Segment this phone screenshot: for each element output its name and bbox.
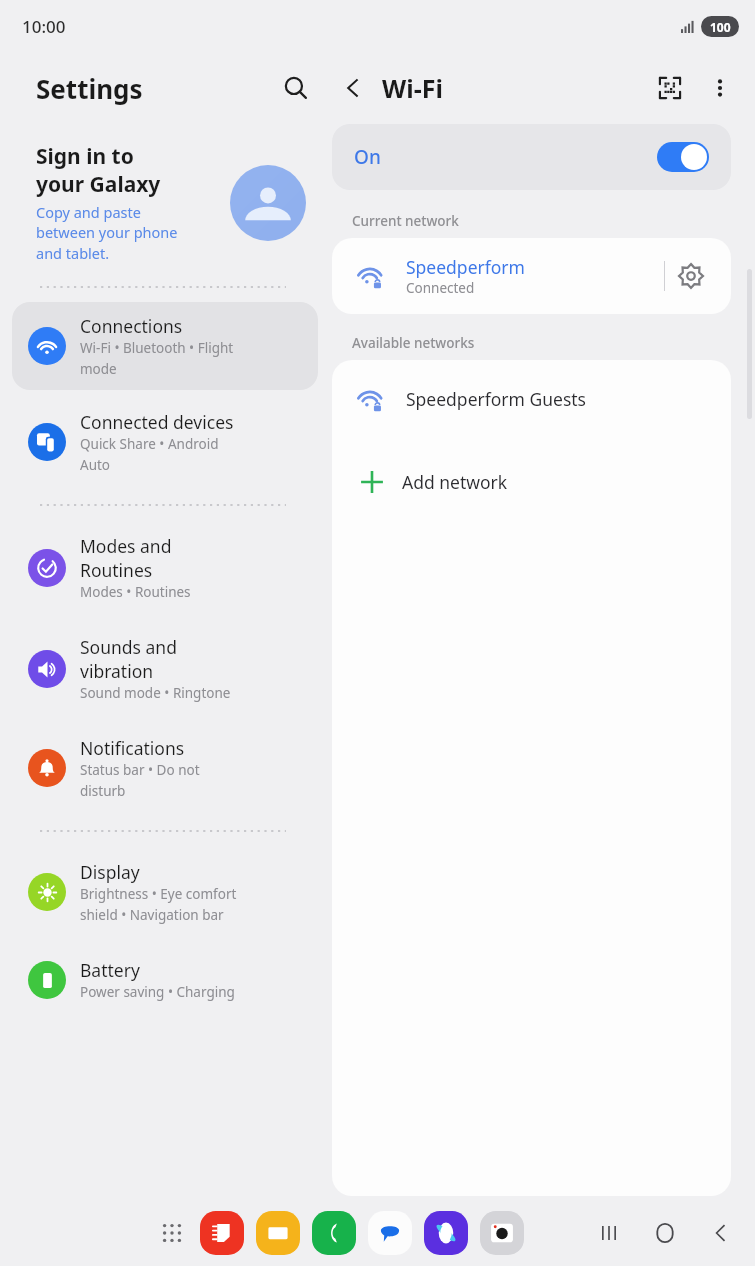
button[interactable]: Back: [693, 1205, 749, 1261]
staticText: Connected devices: [80, 410, 234, 434]
staticText: Display: [80, 860, 140, 884]
button[interactable]: Home: [637, 1205, 693, 1261]
staticText: Connected: [406, 279, 475, 297]
staticText: Sign in to your Galaxy: [36, 142, 161, 198]
button[interactable]: Connected devices: [12, 398, 318, 486]
button[interactable]: Notifications: [12, 724, 318, 812]
staticText: On: [354, 144, 381, 170]
staticText: Quick Share • Android Auto: [80, 435, 219, 474]
button[interactable]: Display: [12, 848, 318, 936]
button[interactable]: More options: [697, 65, 743, 111]
staticText: Modes • Routines: [80, 583, 191, 601]
button[interactable]: Camera: [480, 1211, 524, 1255]
staticText: Power saving • Charging: [80, 983, 235, 1001]
button[interactable]: Phone: [312, 1211, 356, 1255]
button[interactable]: Modes and Routines: [12, 522, 318, 613]
staticText: Copy and paste between your phone and ta…: [36, 202, 178, 264]
button[interactable]: Connections: [12, 302, 318, 390]
button[interactable]: My Files: [256, 1211, 300, 1255]
staticText: Wi-Fi: [382, 71, 443, 105]
button[interactable]: Add network: [332, 438, 731, 526]
button[interactable]: Scan QR code: [647, 65, 693, 111]
button[interactable]: Notes: [200, 1211, 244, 1255]
staticText: Available networks: [352, 334, 475, 352]
staticText: 10:00: [22, 15, 66, 38]
staticText: Speedperform: [406, 255, 525, 279]
button[interactable]: Messages: [368, 1211, 412, 1255]
staticText: 100: [710, 19, 731, 35]
button[interactable]: Apps: [150, 1211, 194, 1255]
button[interactable]: Recents: [581, 1205, 637, 1261]
button[interactable]: Search: [272, 64, 320, 112]
staticText: Sounds and vibration: [80, 635, 177, 683]
button[interactable]: Sounds and vibration: [12, 623, 318, 714]
staticText: Brightness • Eye comfort shield • Naviga…: [80, 885, 237, 924]
staticText: Connections: [80, 314, 183, 338]
button[interactable]: Network settings: [665, 250, 717, 302]
button[interactable]: Back: [330, 65, 376, 111]
button[interactable]: Internet: [424, 1211, 468, 1255]
staticText: Settings: [36, 71, 143, 106]
staticText: Modes and Routines: [80, 534, 172, 582]
staticText: Wi-Fi • Bluetooth • Flight mode: [80, 339, 234, 378]
staticText: Current network: [352, 212, 459, 230]
staticText: Speedperform Guests: [406, 387, 586, 411]
staticText: Add network: [402, 470, 508, 494]
button[interactable]: Speedperform Guests: [332, 360, 731, 438]
button[interactable]: On: [332, 124, 731, 190]
button[interactable]: Speedperform: [332, 238, 731, 314]
staticText: Status bar • Do not disturb: [80, 761, 200, 800]
staticText: Notifications: [80, 736, 185, 760]
staticText: Battery: [80, 958, 140, 982]
button[interactable]: Battery: [12, 946, 318, 1013]
button[interactable]: Sign in to your Galaxy: [36, 142, 306, 264]
staticText: Sound mode • Ringtone: [80, 684, 231, 702]
